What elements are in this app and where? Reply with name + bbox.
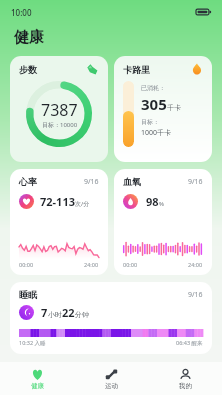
staticText: 已消耗： bbox=[141, 84, 165, 92]
staticText: 目标： bbox=[141, 118, 159, 126]
button[interactable]: 健康 bbox=[0, 362, 74, 395]
staticText: 目标：10000 bbox=[42, 121, 78, 129]
staticText: 9/16 bbox=[188, 177, 203, 187]
staticText: 305 bbox=[141, 94, 167, 114]
staticText: 10:32 入睡 bbox=[19, 339, 46, 347]
staticText: 9/16 bbox=[84, 177, 99, 187]
staticText: 1000千卡 bbox=[141, 128, 172, 138]
staticText: 睡眠 bbox=[19, 289, 37, 300]
staticText: 健康 bbox=[31, 382, 44, 390]
staticText: % bbox=[159, 200, 164, 208]
staticText: 分钟 bbox=[75, 310, 89, 319]
staticText: 98 bbox=[146, 194, 159, 209]
staticText: 24:00 bbox=[188, 261, 203, 268]
button[interactable]: 我的 bbox=[148, 362, 222, 395]
button[interactable]: 睡眠 bbox=[10, 282, 212, 354]
staticText: 7 bbox=[41, 305, 48, 320]
button[interactable]: 血氧 bbox=[114, 169, 212, 275]
button[interactable]: 卡路里 bbox=[114, 56, 212, 162]
button[interactable]: 心率 bbox=[10, 169, 108, 275]
staticText: 心率 bbox=[19, 176, 37, 187]
staticText: 我的 bbox=[179, 382, 192, 390]
staticText: 运动 bbox=[105, 382, 118, 390]
other: 卡路里图标 bbox=[191, 63, 203, 75]
staticText: 00:00 bbox=[123, 261, 138, 268]
staticText: 7387 bbox=[41, 99, 78, 121]
staticText: 卡路里 bbox=[123, 64, 150, 75]
button[interactable]: 运动 bbox=[74, 362, 148, 395]
staticText: 9/16 bbox=[188, 290, 203, 300]
button[interactable]: 步数 bbox=[10, 56, 108, 162]
staticText: 健康 bbox=[14, 28, 44, 47]
staticText: 24:00 bbox=[84, 261, 99, 268]
staticText: 10:00 bbox=[11, 7, 32, 18]
staticText: 步数 bbox=[19, 64, 37, 75]
staticText: 次/分 bbox=[75, 200, 90, 208]
staticText: 06:43 醒来 bbox=[176, 339, 203, 347]
staticText: 小时 bbox=[48, 310, 62, 319]
staticText: 72-113 bbox=[40, 194, 75, 209]
staticText: 血氧 bbox=[123, 176, 141, 187]
staticText: 00:00 bbox=[19, 261, 34, 268]
other: 步数图标 bbox=[86, 63, 99, 76]
staticText: 22 bbox=[62, 305, 75, 320]
staticText: 千卡 bbox=[167, 103, 181, 112]
